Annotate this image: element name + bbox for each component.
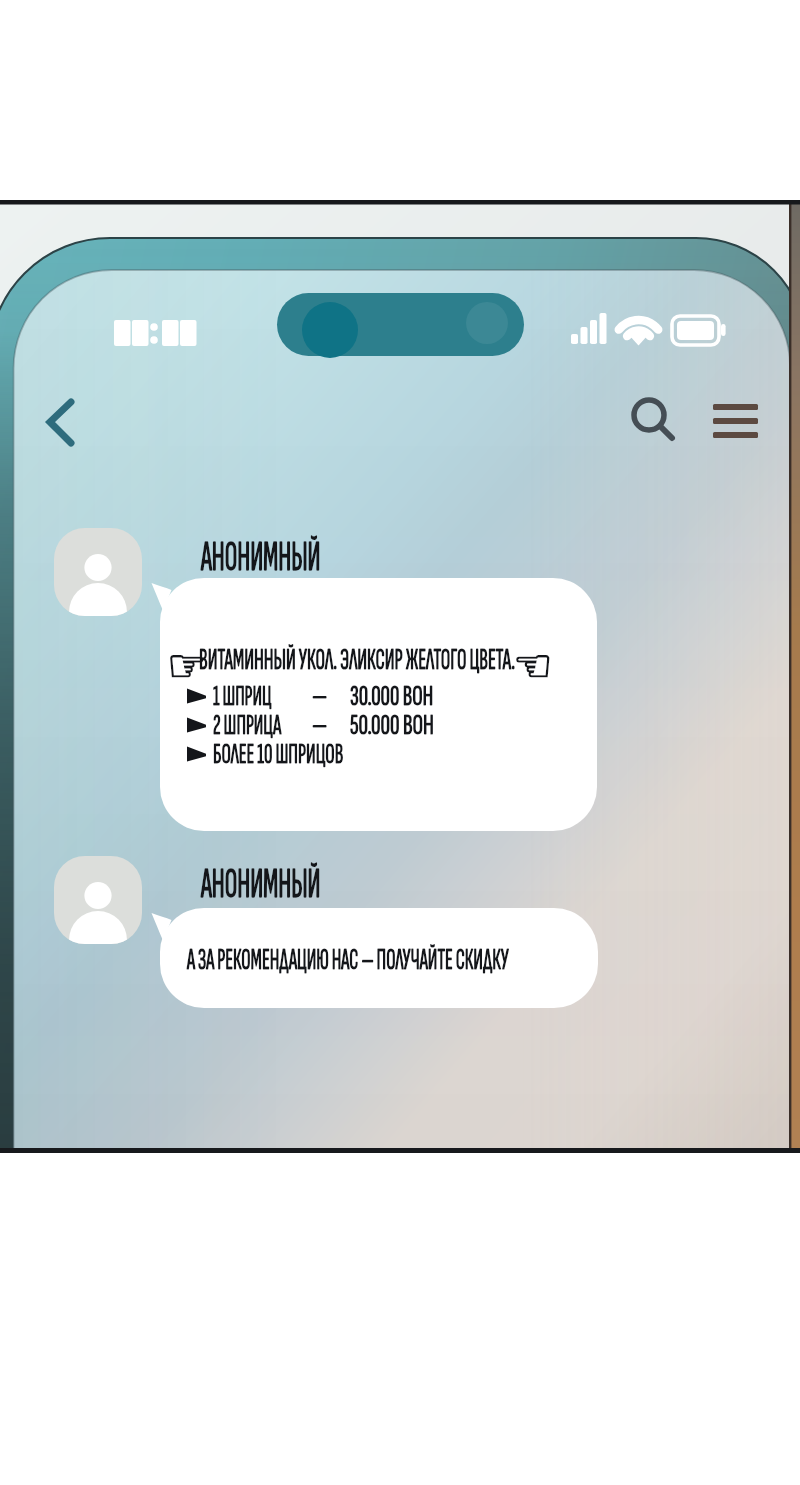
- staticText: 2 ШПРИЦА: [213, 708, 282, 743]
- staticText: —: [312, 708, 328, 743]
- staticText: 30.000 ВОН: [350, 679, 434, 714]
- button[interactable]: Profile photo: [54, 528, 142, 616]
- staticText: ВИТАМИННЫЙ УКОЛ. ЭЛИКСИР ЖЕЛТОГО ЦВЕТА.: [199, 641, 515, 678]
- staticText: 50.000 ВОН: [350, 708, 435, 743]
- staticText: БОЛЕЕ 10 ШПРИЦОВ: [213, 737, 343, 772]
- button[interactable]: Dynamic island: [277, 293, 524, 356]
- staticText: АНОНИМНЫЙ: [201, 858, 321, 910]
- button[interactable]: А ЗА РЕКОМЕНДАЦИЮ НАС — ПОЛУЧАЙТЕ СКИДКУ: [160, 908, 598, 1008]
- staticText: А ЗА РЕКОМЕНДАЦИЮ НАС — ПОЛУЧАЙТЕ СКИДКУ: [187, 941, 509, 978]
- button[interactable]: ☞: [160, 578, 597, 831]
- staticText: —: [312, 679, 328, 714]
- button[interactable]: Back: [34, 386, 106, 458]
- staticText: АНОНИМНЫЙ: [201, 531, 321, 583]
- button[interactable]: Profile photo: [54, 856, 142, 944]
- staticText: 1 ШПРИЦ: [213, 679, 272, 714]
- staticText: ☞: [167, 640, 207, 691]
- button[interactable]: Search: [614, 380, 686, 452]
- staticText: ☜: [513, 640, 553, 691]
- button[interactable]: Menu: [700, 380, 772, 452]
